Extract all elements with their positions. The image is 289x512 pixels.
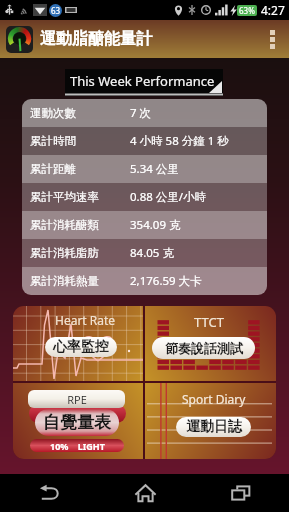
button[interactable]: 運動次數 xyxy=(22,99,267,127)
button[interactable]: 累計消耗熱量 xyxy=(22,267,267,295)
staticText: 累計消耗熱量 xyxy=(30,274,99,288)
staticText: 運動次數 xyxy=(30,106,76,120)
staticText: This Week Performance xyxy=(70,72,215,90)
staticText: 63 xyxy=(51,5,61,16)
button[interactable]: 心率監控 xyxy=(45,337,117,357)
button[interactable]: 累計消耗脂肪 xyxy=(22,239,267,267)
staticText: 0.88 公里/小時 xyxy=(130,189,207,205)
staticText: 累計消耗脂肪 xyxy=(30,246,99,260)
button[interactable]: RPE xyxy=(28,390,125,408)
button[interactable]: 運動日誌 xyxy=(176,417,251,437)
staticText: 50% MID xyxy=(54,408,101,420)
staticText: 運動日誌 xyxy=(186,418,242,436)
staticText: 5.34 公里 xyxy=(130,161,179,177)
staticText: 累計距離 xyxy=(30,162,76,176)
button[interactable]: Recent apps xyxy=(193,474,289,512)
button[interactable]: Sport Diary xyxy=(145,383,276,459)
staticText: 4:27 xyxy=(261,2,285,18)
staticText: 運動脂醣能量計 xyxy=(40,29,152,49)
button[interactable]: 10% LIGHT xyxy=(30,439,124,452)
button[interactable]: TTCT xyxy=(145,306,276,381)
button[interactable]: 自覺量表 xyxy=(35,409,119,436)
staticText: 63% xyxy=(239,5,255,16)
button[interactable]: 累計平均速率 xyxy=(22,183,267,211)
staticText: 10% LIGHT xyxy=(50,440,105,452)
staticText: 心率監控 xyxy=(53,338,109,356)
button[interactable]: 50% MID xyxy=(13,383,143,459)
button[interactable]: 累計時間 xyxy=(22,127,267,155)
staticText: Heart Rate xyxy=(55,312,116,328)
staticText: 354.09 克 xyxy=(130,217,181,233)
staticText: TTCT xyxy=(194,313,224,331)
button[interactable]: App icon xyxy=(6,26,33,53)
staticText: RPE xyxy=(67,392,87,407)
staticText: 84.05 克 xyxy=(130,245,174,261)
staticText: 節奏說話測試 xyxy=(165,340,243,356)
staticText: 累計平均速率 xyxy=(30,190,99,204)
staticText: 2,176.59 大卡 xyxy=(130,273,202,289)
button[interactable]: This Week Performance xyxy=(65,69,223,96)
button[interactable]: Back xyxy=(0,474,97,512)
staticText: 累計時間 xyxy=(30,134,76,148)
staticText: Sport Diary xyxy=(182,391,246,407)
button[interactable]: 累計消耗醣類 xyxy=(22,211,267,239)
staticText: 7 次 xyxy=(130,105,152,121)
button[interactable]: More options xyxy=(263,20,281,58)
staticText: 自覺量表 xyxy=(43,412,111,433)
button[interactable]: Heart Rate xyxy=(13,306,143,381)
staticText: 4 小時 58 分鐘 1 秒 xyxy=(130,133,229,149)
button[interactable]: 累計距離 xyxy=(22,155,267,183)
staticText: 累計消耗醣類 xyxy=(30,218,99,232)
button[interactable]: 節奏說話測試 xyxy=(152,337,255,359)
button[interactable]: Home xyxy=(97,474,193,512)
